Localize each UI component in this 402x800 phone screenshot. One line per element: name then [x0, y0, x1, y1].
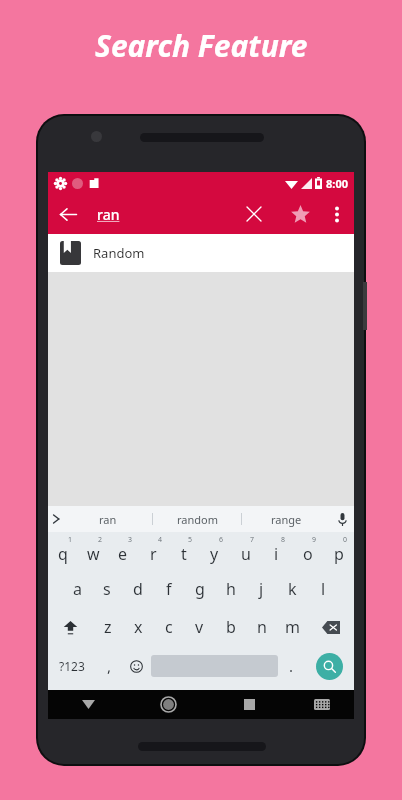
button[interactable]: Voice input [330, 508, 354, 530]
staticText: 5 [188, 535, 193, 545]
staticText: Search Feature [95, 25, 308, 66]
button[interactable]: Clear [234, 194, 274, 234]
button[interactable]: j [246, 570, 277, 608]
staticText: n [257, 616, 267, 638]
button[interactable]: ran [97, 205, 120, 224]
button[interactable]: l [308, 570, 339, 608]
staticText: b [226, 616, 236, 638]
staticText: g [195, 578, 205, 600]
staticText: e [118, 543, 128, 565]
button[interactable]: 0 [323, 532, 354, 570]
button[interactable]: . [278, 646, 304, 686]
button[interactable]: 7 [230, 532, 261, 570]
staticText: x [134, 616, 143, 638]
staticText: ran [99, 512, 117, 527]
button[interactable]: ran [64, 506, 152, 532]
staticText: k [288, 578, 297, 600]
button[interactable]: Favorite [280, 194, 320, 234]
staticText: q [58, 543, 68, 565]
staticText: 8 [281, 535, 286, 545]
button[interactable]: 3 [108, 532, 138, 570]
staticText: ?123 [59, 658, 85, 674]
button[interactable]: 6 [199, 532, 230, 570]
button[interactable]: Emoji [122, 646, 151, 686]
staticText: l [321, 578, 326, 600]
staticText: range [271, 512, 302, 527]
button[interactable]: s [92, 570, 122, 608]
staticText: j [259, 578, 264, 600]
staticText: m [285, 616, 300, 638]
button[interactable]: 1 [48, 532, 78, 570]
button[interactable]: 9 [292, 532, 323, 570]
staticText: p [334, 543, 344, 565]
button[interactable]: m [277, 608, 308, 646]
button[interactable]: f [153, 570, 184, 608]
staticText: 6 [219, 535, 224, 545]
staticText: z [104, 616, 112, 638]
staticText: o [303, 543, 313, 565]
staticText: a [73, 578, 82, 600]
button[interactable]: Shift [48, 608, 93, 646]
button[interactable]: , [96, 646, 122, 686]
button[interactable]: n [246, 608, 277, 646]
staticText: f [166, 578, 172, 600]
button[interactable]: 2 [78, 532, 108, 570]
button[interactable]: Recents [209, 690, 290, 719]
staticText: 1 [68, 535, 73, 545]
staticText: d [133, 578, 143, 600]
staticText: 8:00 [326, 176, 348, 191]
button[interactable]: Home [128, 690, 209, 719]
staticText: 3 [128, 535, 133, 545]
button[interactable]: Backspace [308, 608, 354, 646]
button[interactable]: d [122, 570, 153, 608]
staticText: . [289, 656, 294, 676]
button[interactable]: Back [48, 194, 88, 234]
button[interactable]: 5 [168, 532, 199, 570]
staticText: Random [93, 244, 145, 262]
staticText: r [150, 543, 157, 565]
staticText: h [226, 578, 236, 600]
button[interactable]: c [153, 608, 184, 646]
button[interactable]: More suggestions [48, 508, 64, 530]
staticText: 9 [312, 535, 317, 545]
staticText: 0 [343, 535, 348, 545]
staticText: w [87, 543, 100, 565]
staticText: c [165, 616, 173, 638]
button[interactable]: Back [48, 690, 128, 719]
button[interactable]: b [215, 608, 246, 646]
button[interactable]: g [184, 570, 215, 608]
button[interactable]: Switch keyboard [290, 690, 354, 719]
button[interactable]: Search [304, 646, 354, 686]
button[interactable]: v [184, 608, 215, 646]
button[interactable]: random [153, 506, 241, 532]
button[interactable]: Random [48, 234, 354, 272]
staticText: random [177, 512, 218, 527]
staticText: t [181, 543, 187, 565]
staticText: 7 [250, 535, 255, 545]
staticText: s [103, 578, 111, 600]
staticText: 2 [98, 535, 103, 545]
staticText: v [195, 616, 204, 638]
button[interactable]: ?123 [48, 646, 96, 686]
staticText: i [274, 543, 279, 565]
button[interactable]: h [215, 570, 246, 608]
staticText: y [210, 543, 219, 565]
staticText: 4 [158, 535, 163, 545]
button[interactable]: 8 [261, 532, 292, 570]
button[interactable]: range [242, 506, 330, 532]
button[interactable]: a [62, 570, 92, 608]
button[interactable]: x [123, 608, 153, 646]
staticText: u [241, 543, 251, 565]
button[interactable]: z [93, 608, 123, 646]
button[interactable]: k [277, 570, 308, 608]
button[interactable]: More options [320, 194, 354, 234]
staticText: , [107, 656, 112, 676]
button[interactable]: 4 [138, 532, 168, 570]
